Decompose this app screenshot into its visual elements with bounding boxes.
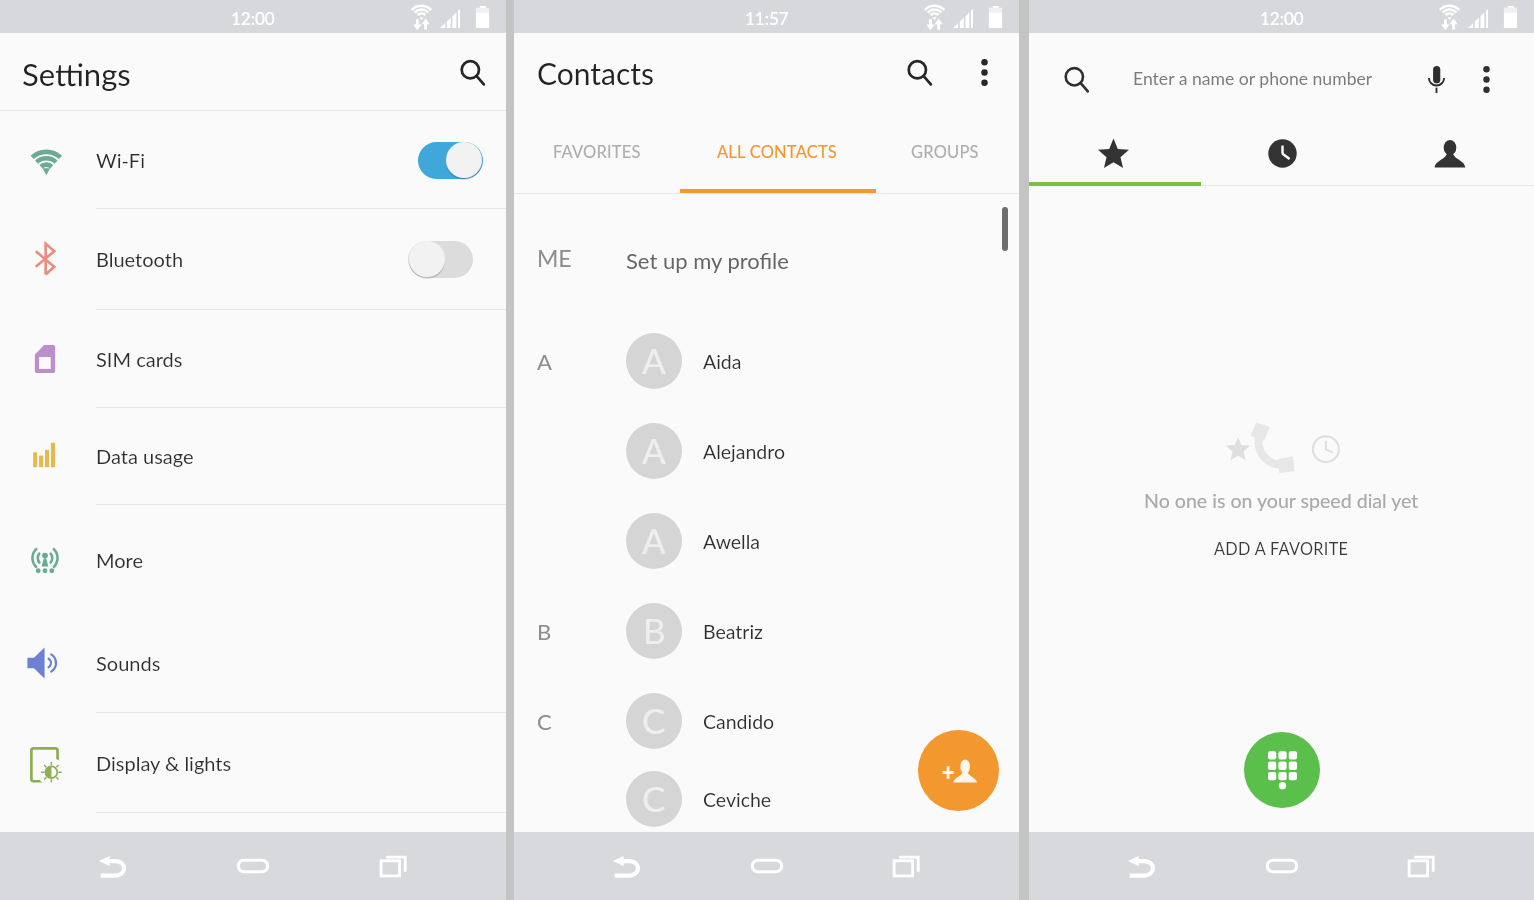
button[interactable]: Dialpad — [1244, 732, 1320, 808]
button[interactable]: More options — [1460, 53, 1512, 105]
button[interactable]: ADD A FAVORITE — [1200, 533, 1363, 565]
staticText: C — [642, 699, 666, 741]
staticText: More — [96, 548, 144, 572]
staticText: Display & lights — [96, 751, 232, 775]
staticText: FAVORITES — [553, 142, 641, 162]
staticText: Sounds — [96, 651, 161, 675]
staticText: A — [642, 339, 666, 381]
button[interactable]: More — [0, 505, 506, 614]
staticText: SIM cards — [96, 347, 183, 371]
button[interactable]: SIM cards — [0, 310, 506, 408]
button[interactable]: More options — [958, 46, 1010, 98]
button[interactable]: Favorites — [1029, 116, 1198, 186]
button[interactable]: Back — [83, 837, 141, 895]
button[interactable]: ME — [514, 216, 1019, 316]
staticText: A — [642, 429, 666, 471]
button[interactable]: Recents — [1393, 837, 1451, 895]
button[interactable]: Recents — [878, 837, 936, 895]
staticText: A — [642, 519, 666, 561]
button[interactable]: Voice search — [1410, 53, 1462, 105]
staticText: 12:00 — [231, 8, 275, 28]
staticText: ME — [537, 244, 572, 272]
staticText: Contacts — [537, 55, 655, 91]
button[interactable]: Bluetooth — [0, 209, 506, 310]
staticText: Data usage — [96, 444, 194, 468]
staticText: Wi-Fi — [96, 148, 145, 172]
staticText: Beatriz — [703, 620, 763, 643]
button[interactable]: Back — [597, 837, 655, 895]
staticText: Awella — [703, 530, 760, 553]
button[interactable]: Wi-Fi — [0, 111, 506, 209]
button[interactable]: Home — [738, 837, 796, 895]
staticText: 12:00 — [1260, 8, 1304, 28]
button[interactable]: C — [514, 676, 1019, 766]
staticText: Bluetooth — [96, 247, 184, 271]
staticText: Settings — [22, 55, 131, 92]
button[interactable]: Display & lights — [0, 713, 506, 813]
button[interactable]: Search — [1050, 53, 1102, 105]
button[interactable]: A — [514, 496, 1019, 586]
staticText: Candido — [703, 710, 775, 733]
button[interactable]: Contacts — [1366, 116, 1534, 186]
button[interactable]: Search — [893, 46, 945, 98]
staticText: C — [642, 777, 666, 819]
button[interactable]: Home — [224, 837, 282, 895]
button[interactable]: Recents — [365, 837, 423, 895]
button[interactable]: FAVORITES — [514, 110, 683, 193]
staticText: B — [643, 609, 666, 651]
button[interactable]: Add contact — [918, 730, 999, 811]
button[interactable]: B — [514, 586, 1019, 676]
button[interactable]: C — [514, 766, 1019, 832]
button[interactable]: Home — [1253, 837, 1311, 895]
staticText: Set up my profile — [626, 247, 789, 273]
staticText: B — [537, 618, 552, 644]
staticText: A — [537, 348, 552, 374]
staticText: 11:57 — [745, 8, 789, 28]
staticText: Ceviche — [703, 788, 772, 811]
staticText: ADD A FAVORITE — [1214, 539, 1349, 559]
staticText: ALL CONTACTS — [717, 142, 837, 162]
staticText: Aida — [703, 350, 742, 373]
staticText: No one is on your speed dial yet — [1144, 489, 1419, 513]
button[interactable]: A — [514, 316, 1019, 406]
button[interactable]: Data usage — [0, 408, 506, 505]
staticText: Enter a name or phone number — [1133, 68, 1373, 89]
staticText: Alejandro — [703, 440, 785, 463]
staticText: C — [537, 708, 552, 734]
button[interactable]: Search — [446, 46, 498, 98]
button[interactable]: Sounds — [0, 614, 506, 713]
button[interactable]: Back — [1112, 837, 1170, 895]
button[interactable]: ALL CONTACTS — [683, 110, 851, 193]
button[interactable]: A — [514, 406, 1019, 496]
staticText: GROUPS — [911, 142, 979, 162]
button[interactable]: GROUPS — [851, 110, 1019, 193]
button[interactable]: Recents — [1198, 116, 1366, 186]
